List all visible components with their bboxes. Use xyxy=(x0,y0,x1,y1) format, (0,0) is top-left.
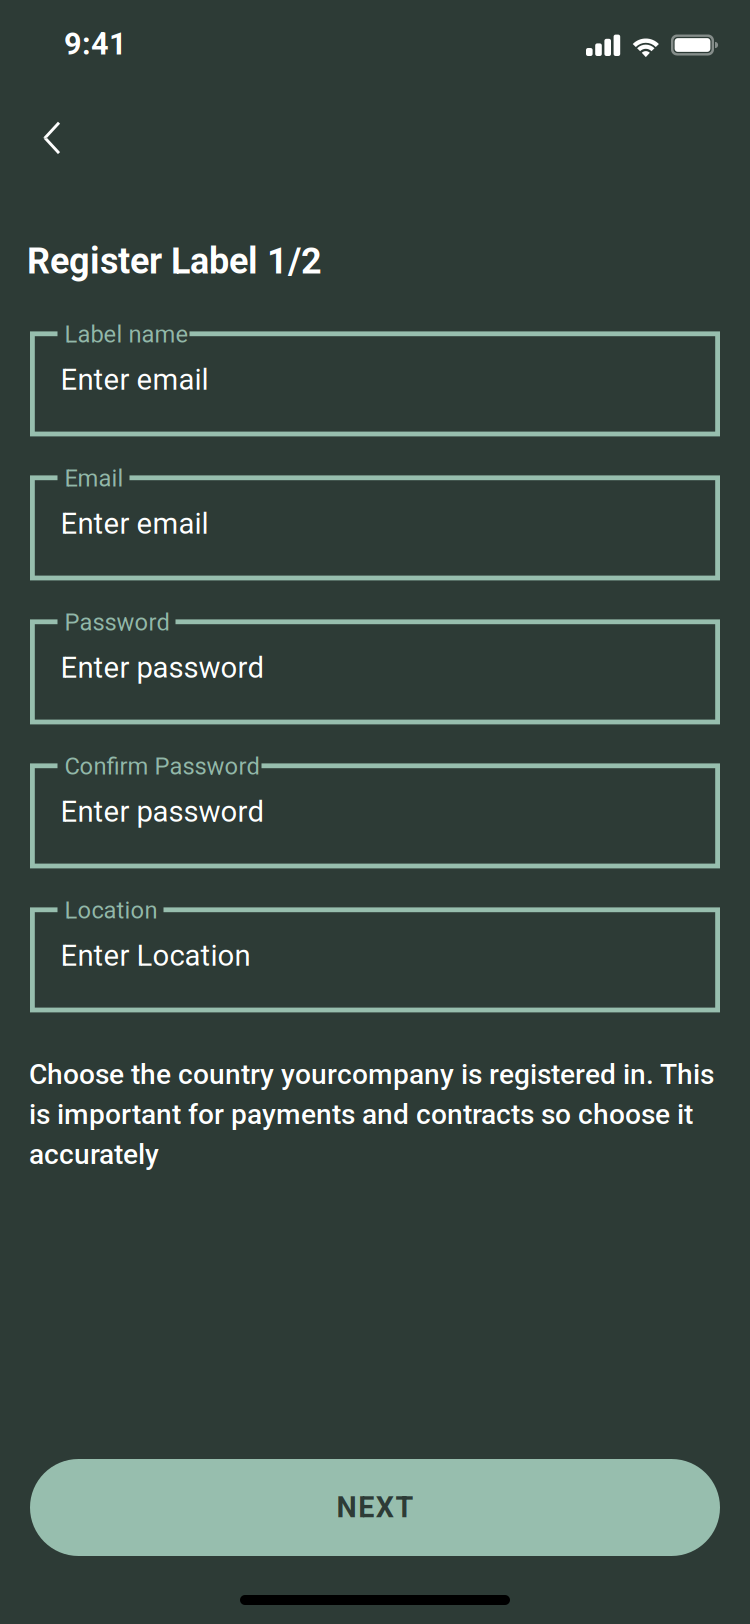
staticText: Label name xyxy=(64,320,188,348)
staticText: Register Label 1/2 xyxy=(27,240,322,282)
staticText: Enter email xyxy=(60,363,208,397)
staticText: Email xyxy=(64,464,123,492)
button[interactable]: NEXT xyxy=(30,1459,720,1556)
staticText: Enter email xyxy=(60,507,208,541)
staticText: 9:41 xyxy=(64,26,127,62)
button[interactable]: Back xyxy=(30,94,118,182)
staticText: Enter Location xyxy=(60,939,250,973)
staticText: Enter password xyxy=(60,651,264,685)
staticText: Choose the country yourcompany is regist… xyxy=(29,1058,714,1171)
staticText: Enter password xyxy=(60,795,264,829)
staticText: Confirm Password xyxy=(64,752,259,780)
staticText: NEXT xyxy=(337,1491,413,1524)
staticText: Password xyxy=(64,608,169,636)
staticText: Location xyxy=(64,896,157,924)
